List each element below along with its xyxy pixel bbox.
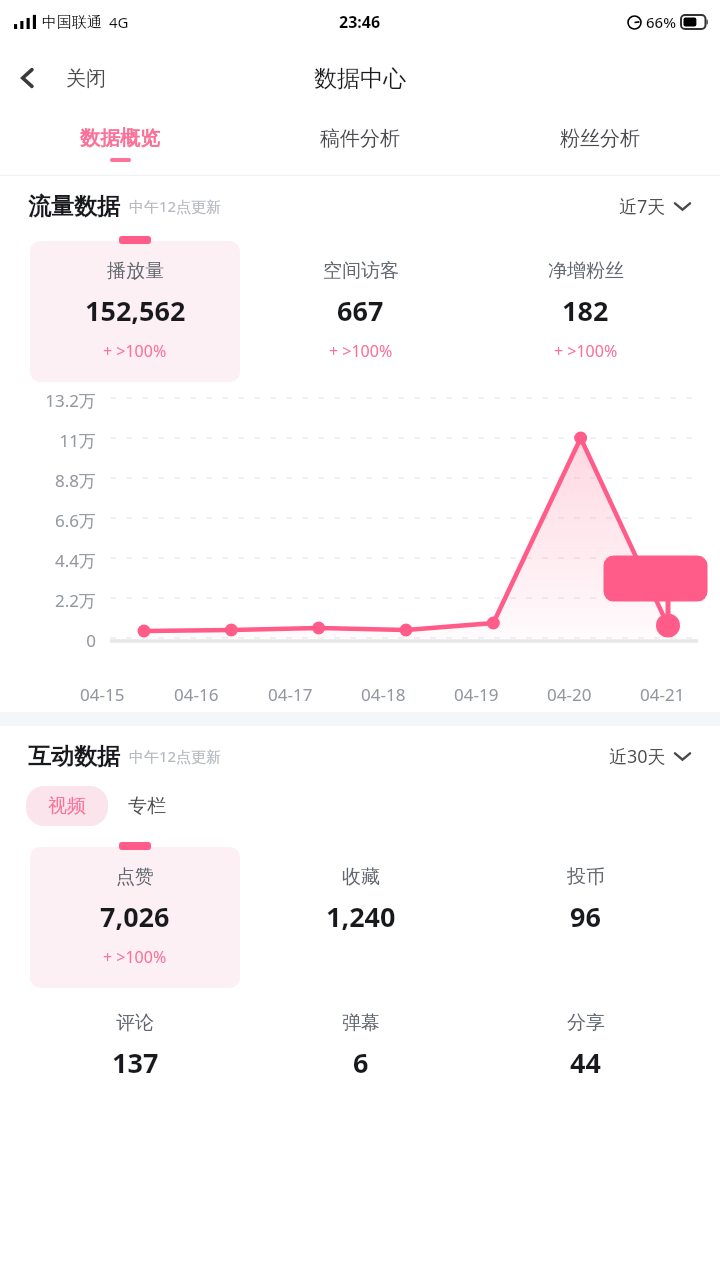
staticText: 04-17 — [268, 683, 313, 706]
staticText: 182 — [562, 292, 609, 329]
staticText: + >100% — [329, 340, 393, 362]
button[interactable]: 评论 — [22, 988, 248, 1131]
staticText: 11万 — [18, 429, 96, 452]
staticText: 分享 — [567, 1011, 605, 1035]
button[interactable]: 投币 — [473, 842, 698, 985]
staticText: 收藏 — [342, 865, 380, 889]
staticText: 中午12点更新 — [129, 196, 222, 216]
button[interactable]: 收藏 — [248, 842, 473, 985]
staticText: 视频 — [48, 794, 86, 818]
staticText: 04-20 — [547, 683, 592, 706]
staticText: 152,562 — [85, 292, 186, 329]
button[interactable]: 关闭 — [56, 58, 116, 99]
staticText: 弹幕 — [342, 1011, 380, 1035]
staticText: 23:46 — [339, 11, 381, 33]
staticText: 04-15 — [80, 683, 125, 706]
staticText: 互动数据 — [28, 742, 120, 771]
staticText: 2.2万 — [18, 589, 96, 612]
staticText: 13.2万 — [18, 389, 96, 412]
staticText: 中国联通 — [42, 13, 102, 32]
button[interactable]: 稿件分析 — [240, 112, 480, 175]
button[interactable]: 播放量 — [22, 236, 248, 382]
staticText: 空间访客 — [323, 259, 399, 283]
button[interactable]: 数据概览 — [0, 112, 240, 175]
button[interactable]: 点赞 — [22, 842, 248, 988]
staticText: 667 — [337, 292, 384, 329]
staticText: 数据概览 — [80, 126, 160, 151]
staticText: 中午12点更新 — [129, 746, 222, 766]
staticText: 137 — [112, 1044, 159, 1081]
staticText: 近7天 — [619, 194, 666, 219]
staticText: 04-16 — [174, 683, 219, 706]
staticText: 6 — [353, 1044, 369, 1081]
staticText: 近30天 — [609, 744, 666, 769]
staticText: 44 — [570, 1044, 601, 1081]
staticText: 投币 — [567, 865, 605, 889]
staticText: + >100% — [554, 340, 618, 362]
staticText: 6.6万 — [18, 509, 96, 532]
staticText: 点赞 — [116, 865, 154, 889]
staticText: + >100% — [103, 340, 167, 362]
button[interactable]: 分享 — [473, 988, 698, 1131]
staticText: 关闭 — [66, 66, 106, 91]
staticText: 评论 — [116, 1011, 154, 1035]
staticText: 04-19 — [454, 683, 499, 706]
staticText: 96 — [570, 898, 601, 935]
staticText: 04-18 — [361, 683, 406, 706]
button[interactable]: 专栏 — [108, 786, 186, 826]
button[interactable]: Back — [0, 50, 56, 106]
staticText: 1,240 — [326, 898, 396, 935]
staticText: + >100% — [103, 946, 167, 968]
staticText: 播放量 — [107, 259, 164, 283]
staticText: 66% — [646, 12, 676, 32]
staticText: 专栏 — [128, 794, 166, 818]
button[interactable]: 近30天 — [605, 740, 694, 773]
button[interactable]: 弹幕 — [248, 988, 473, 1131]
staticText: 流量数据 — [28, 192, 120, 221]
button[interactable]: 粉丝分析 — [480, 112, 720, 175]
button[interactable]: 近7天 — [615, 190, 694, 223]
staticText: 7,026 — [100, 898, 170, 935]
staticText: 04-21 — [640, 683, 685, 706]
staticText: 数据中心 — [314, 64, 406, 93]
staticText: 4G — [109, 12, 129, 32]
staticText: 4.4万 — [18, 549, 96, 572]
button[interactable]: 净增粉丝 — [473, 236, 698, 382]
staticText: 粉丝分析 — [560, 126, 640, 151]
staticText: 净增粉丝 — [548, 259, 624, 283]
staticText: 稿件分析 — [320, 126, 400, 151]
button[interactable]: 空间访客 — [248, 236, 473, 382]
button[interactable]: 视频 — [26, 786, 108, 826]
staticText: 8.8万 — [18, 469, 96, 492]
staticText: 0 — [18, 629, 96, 652]
